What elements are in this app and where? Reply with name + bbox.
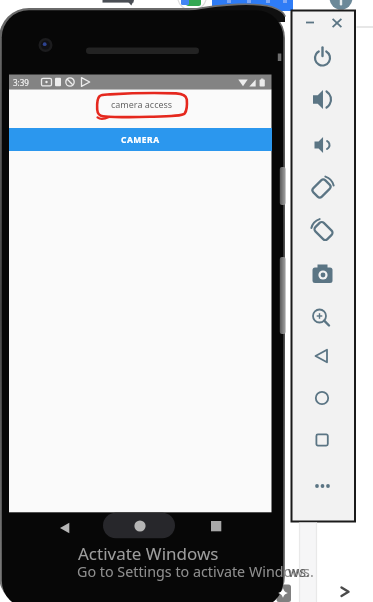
staticText: ws. xyxy=(288,562,310,581)
button[interactable] xyxy=(308,384,337,412)
button[interactable] xyxy=(308,131,337,159)
staticText: camera access xyxy=(111,98,173,110)
button[interactable] xyxy=(336,582,354,600)
button[interactable] xyxy=(308,342,337,370)
button[interactable] xyxy=(328,12,348,32)
button[interactable] xyxy=(308,44,337,72)
button[interactable] xyxy=(308,302,337,330)
button[interactable] xyxy=(308,217,337,245)
staticText: Go to Settings to activate Windows. xyxy=(77,562,314,581)
button[interactable]: CAMERA xyxy=(9,128,272,151)
button[interactable] xyxy=(308,86,337,114)
button[interactable] xyxy=(308,426,337,454)
staticText: Activate Windows xyxy=(78,542,219,565)
button[interactable] xyxy=(126,515,154,539)
staticText: CAMERA xyxy=(121,134,160,146)
button[interactable] xyxy=(308,174,337,202)
button[interactable] xyxy=(205,515,227,537)
button[interactable] xyxy=(308,260,337,288)
staticText: 3:39 xyxy=(13,77,29,88)
button[interactable] xyxy=(54,517,76,539)
button[interactable] xyxy=(308,472,337,500)
button[interactable] xyxy=(306,12,324,32)
